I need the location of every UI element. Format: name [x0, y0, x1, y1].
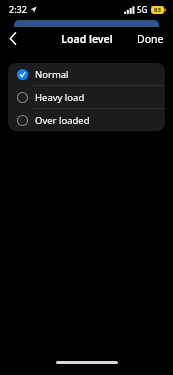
staticText: 83 — [154, 6, 161, 14]
staticText: 2:32 — [9, 3, 27, 15]
staticText: Heavy load — [35, 91, 85, 104]
staticText: Over loaded — [35, 114, 90, 127]
button[interactable]: Done — [128, 27, 173, 50]
staticText: Done — [137, 32, 164, 46]
staticText: Load level — [61, 32, 113, 46]
button[interactable]: Over loaded — [8, 109, 165, 131]
button[interactable]: Back — [0, 27, 26, 50]
staticText: Normal — [35, 68, 69, 81]
button[interactable]: Normal — [8, 63, 165, 85]
button[interactable]: Heavy load — [8, 86, 165, 108]
staticText: 5G — [137, 4, 148, 15]
